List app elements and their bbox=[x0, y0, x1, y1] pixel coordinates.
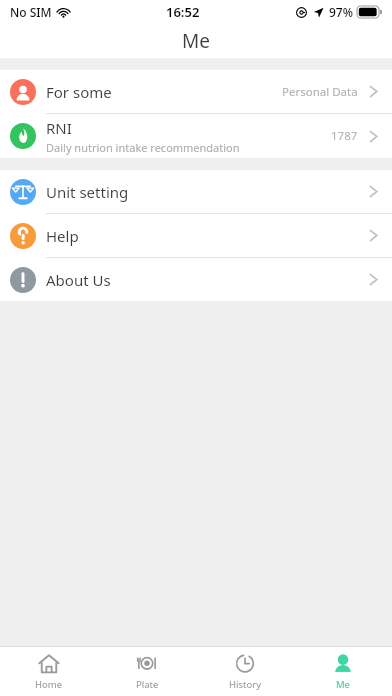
button[interactable]: Home bbox=[0, 647, 98, 696]
staticText: Unit setting bbox=[46, 182, 129, 202]
staticText: For some bbox=[46, 82, 112, 102]
staticText: History bbox=[229, 678, 261, 691]
staticText: 97% bbox=[329, 4, 353, 20]
staticText: Me bbox=[336, 678, 350, 691]
button[interactable]: Unit setting bbox=[0, 170, 392, 213]
staticText: Home bbox=[35, 678, 63, 691]
button[interactable]: Plate bbox=[98, 647, 196, 696]
button[interactable]: About Us bbox=[0, 258, 392, 301]
staticText: 16:52 bbox=[166, 3, 200, 21]
staticText: Personal Data bbox=[282, 84, 358, 100]
staticText: Me bbox=[182, 28, 210, 54]
staticText: 1787 bbox=[331, 128, 358, 144]
button[interactable]: Me bbox=[294, 647, 392, 696]
button[interactable]: For some bbox=[0, 70, 392, 113]
button[interactable]: RNI bbox=[0, 114, 392, 158]
staticText: About Us bbox=[46, 270, 111, 290]
staticText: Plate bbox=[136, 678, 159, 691]
staticText: No SIM bbox=[10, 4, 52, 20]
button[interactable]: History bbox=[196, 647, 294, 696]
staticText: RNI bbox=[46, 118, 72, 138]
staticText: Help bbox=[46, 226, 79, 246]
button[interactable]: Help bbox=[0, 214, 392, 257]
staticText: Daily nutrion intake recommendation bbox=[46, 140, 240, 155]
